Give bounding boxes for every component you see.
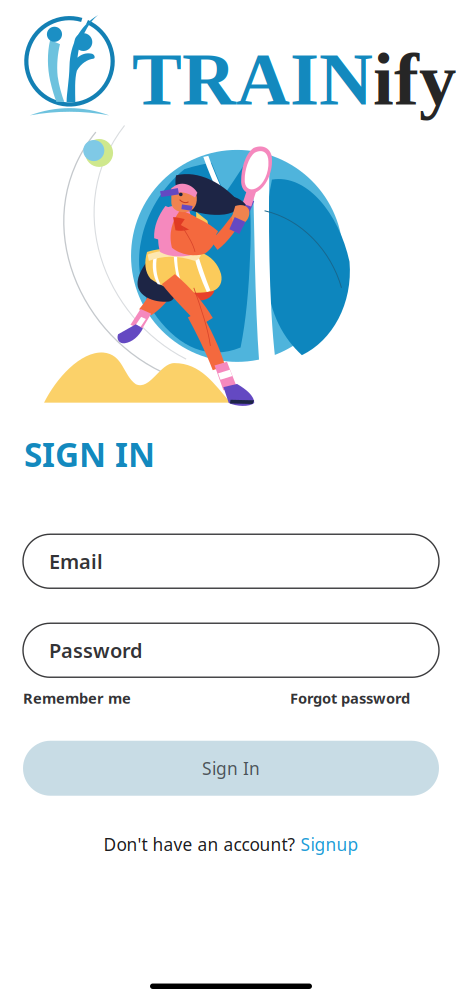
staticText: Password	[49, 637, 143, 664]
staticText: TRAIN	[132, 38, 373, 121]
button[interactable]: Signup	[300, 833, 358, 856]
staticText: Sign In	[202, 757, 260, 780]
button[interactable]: Sign In	[23, 741, 439, 796]
button[interactable]: Remember me	[23, 688, 131, 708]
staticText: SIGN IN	[24, 432, 155, 476]
staticText: Remember me	[23, 688, 131, 708]
button[interactable]: Email	[23, 534, 439, 588]
button[interactable]: Password	[23, 623, 439, 677]
staticText: Email	[49, 548, 103, 575]
button[interactable]: Forgot password	[290, 688, 410, 708]
staticText: Forgot password	[290, 688, 410, 708]
staticText: ify	[373, 38, 456, 121]
staticText: Signup	[300, 833, 358, 856]
staticText: Don't have an account?	[103, 833, 300, 856]
